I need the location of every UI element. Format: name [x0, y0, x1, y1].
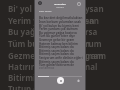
- staticText: Bu kez dert değil mutluluktan: [39, 16, 83, 20]
- staticText: Seviyorum arife dinlisin eğleri: [39, 56, 83, 60]
- staticText: Bitirmiş saçım kalanı da: [39, 52, 74, 56]
- staticText: Semicenk: [56, 6, 64, 8]
- button[interactable]: Close: [37, 0, 43, 6]
- staticText: rsa: [85, 26, 98, 37]
- staticText: zorlanmaz: [39, 66, 55, 70]
- staticText: rum: [85, 38, 102, 49]
- staticText: Yerim yurdum çok dumam: [39, 27, 78, 31]
- staticText: Bi' yol bulun bu kiymiş beni: [39, 24, 79, 28]
- staticText: Bitirmiş saçım: [8, 72, 65, 83]
- staticText: Bu yağmur yağarsa: [8, 26, 86, 37]
- staticText: gram: [85, 50, 107, 61]
- staticText: Gezmeye gelse bir gram: [8, 50, 104, 61]
- staticText: Bitirmiş saçım kalanı da: [39, 60, 74, 64]
- staticText: Hatırım kalmaz nal: [8, 61, 84, 72]
- staticText: Tüm günleri bitirsem de: [39, 63, 74, 67]
- staticText: Tüm bunlar durulum: [8, 38, 90, 49]
- staticText: ysan: [85, 3, 104, 14]
- staticText: Bitirmiş saçım kalanı da: [39, 45, 74, 49]
- staticText: Yerim yurdum sensen: [8, 15, 95, 26]
- staticText: Tutup giderim: [8, 83, 65, 90]
- staticText: Bitirmiş saçım kalanı da: [39, 49, 74, 53]
- staticText: Bu yağmur yağsa bastırca: [39, 31, 77, 35]
- staticText: Tüm bu günler biter diye: [39, 34, 76, 38]
- staticText: nal: [85, 61, 98, 72]
- staticText: san: [85, 15, 100, 26]
- staticText: Gezmeye gelse bir gram: [39, 38, 75, 42]
- button[interactable]: Seek: [38, 76, 82, 77]
- staticText: İnan korkum yolumdan usak: [39, 20, 82, 24]
- staticText: Şarkı Sözleri: [39, 10, 52, 13]
- staticText: Hatırım kalmaz ben bilirim: [39, 42, 78, 46]
- button[interactable]: Play: [57, 77, 64, 84]
- staticText: Bi' yol bulmuşsan: [8, 3, 78, 14]
- button[interactable]: Search lyrics: [76, 1, 82, 7]
- button[interactable]: Lock screen: [76, 78, 80, 82]
- staticText: Şikayetim: [54, 2, 66, 5]
